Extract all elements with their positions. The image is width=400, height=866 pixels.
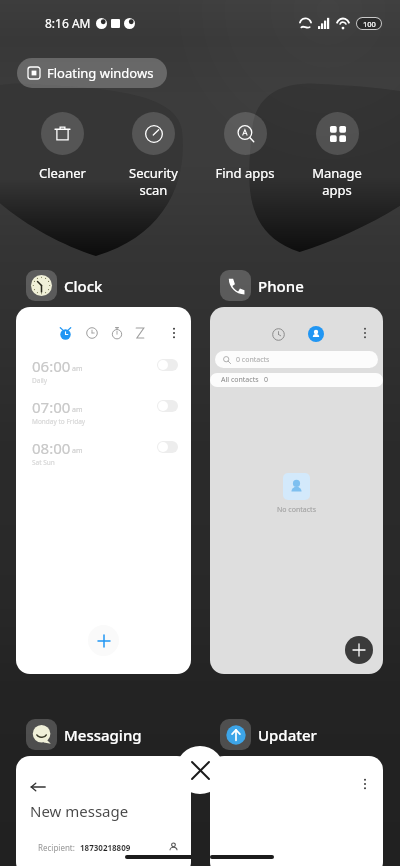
button[interactable]: 08:00 (32, 438, 178, 470)
button[interactable]: Messaging (26, 719, 142, 750)
button[interactable]: Back (30, 779, 46, 795)
button[interactable]: Find apps (199, 112, 291, 182)
button[interactable]: Toggle alarm 08:00 (157, 441, 178, 453)
staticText: Recipient: (38, 842, 75, 853)
staticText: Phone (258, 276, 304, 296)
staticText: 07:00 (32, 397, 71, 417)
staticText: New message (30, 801, 129, 821)
button[interactable]: 06:00 (32, 356, 178, 388)
staticText: Sat Sun (32, 458, 55, 467)
button[interactable]: Phone (220, 270, 304, 301)
button[interactable]: Clock (26, 270, 103, 301)
button[interactable]: More options (16, 307, 191, 674)
staticText: am (72, 405, 83, 415)
button[interactable]: Toggle alarm 06:00 (157, 359, 178, 371)
staticText: am (72, 446, 83, 456)
button[interactable]: Updater (220, 719, 317, 750)
staticText: am (72, 364, 83, 374)
button[interactable]: More options (210, 756, 383, 866)
button[interactable]: All contacts (210, 373, 383, 387)
button[interactable]: Add contact (345, 636, 373, 664)
staticText: 18730218809 (80, 842, 131, 853)
staticText: Cleaner (39, 164, 86, 182)
staticText: Clock (64, 276, 103, 296)
staticText: Security scan (129, 164, 178, 199)
staticText: Updater (258, 725, 317, 745)
button[interactable]: Contacts (308, 326, 324, 342)
staticText: 100 (363, 19, 376, 29)
button[interactable]: Toggle alarm 07:00 (157, 400, 178, 412)
button[interactable]: Cleaner (17, 112, 108, 182)
staticText: Daily (32, 376, 48, 385)
staticText: 08:00 (32, 438, 71, 458)
button[interactable]: 07:00 (32, 397, 178, 429)
staticText: 0 contacts (236, 355, 270, 365)
button[interactable]: Manage apps (291, 112, 383, 199)
staticText: Messaging (64, 725, 142, 745)
button[interactable]: Contacts (210, 307, 383, 674)
staticText: All contacts (221, 375, 259, 385)
staticText: Monday to Friday (32, 417, 86, 426)
button[interactable]: More options (358, 326, 372, 340)
button[interactable]: More options (167, 326, 181, 340)
button[interactable]: Add alarm (88, 625, 119, 656)
staticText: Manage apps (312, 164, 362, 199)
staticText: 0 (264, 375, 269, 385)
button[interactable]: Floating windows (17, 58, 167, 88)
button[interactable]: More options (358, 777, 372, 791)
button[interactable]: Close all (176, 746, 224, 794)
staticText: Floating windows (47, 64, 154, 82)
staticText: Find apps (215, 164, 275, 182)
staticText: 06:00 (32, 356, 71, 376)
staticText: No contacts (277, 505, 316, 515)
button[interactable]: Back (16, 756, 191, 866)
staticText: 8:16 AM (45, 15, 91, 31)
button[interactable]: Security scan (108, 112, 199, 199)
button[interactable]: 0 contacts (215, 351, 378, 368)
